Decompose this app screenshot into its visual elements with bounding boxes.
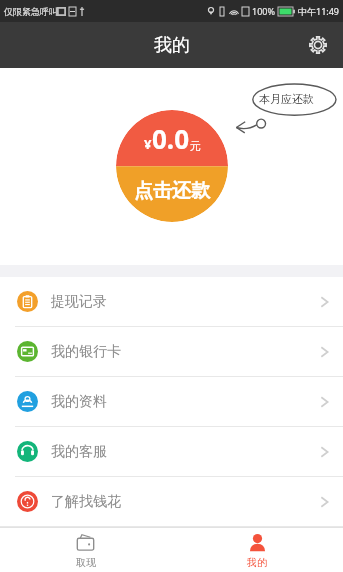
button[interactable]: 我的 (171, 528, 343, 572)
staticText: 我的 (154, 34, 190, 57)
staticText: 元 (190, 139, 201, 153)
staticText: 本月应还款 (259, 92, 314, 106)
staticText: 仅限紧急呼叫 (4, 6, 58, 17)
button[interactable]: 取现 (0, 528, 171, 572)
button[interactable]: ¥ (116, 110, 228, 222)
staticText: 100% (252, 5, 275, 17)
staticText: 我的银行卡 (51, 343, 121, 361)
button[interactable]: 我的客服 (0, 427, 343, 476)
button[interactable]: 我的资料 (0, 377, 343, 426)
button[interactable]: 了解找钱花 (0, 477, 343, 526)
staticText: 我的资料 (51, 393, 107, 411)
staticText: 取现 (76, 556, 96, 569)
staticText: 点击还款 (134, 179, 210, 203)
staticText: 我的 (247, 556, 267, 569)
button[interactable]: 提现记录 (0, 277, 343, 326)
staticText: 我的客服 (51, 443, 107, 461)
button[interactable]: 我的银行卡 (0, 327, 343, 376)
staticText: 提现记录 (51, 293, 107, 311)
staticText: 0.0 (152, 121, 190, 156)
staticText: ¥ (144, 135, 152, 153)
staticText: 了解找钱花 (51, 493, 121, 511)
button[interactable]: Settings (301, 28, 335, 62)
staticText: 中午11:49 (298, 5, 340, 17)
